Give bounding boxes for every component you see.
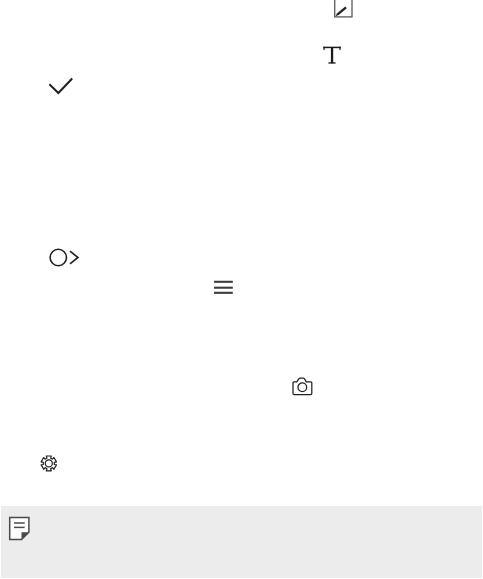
button[interactable]: Create bbox=[331, 0, 357, 18]
button[interactable]: Text format bbox=[320, 43, 342, 65]
button[interactable]: Camera bbox=[291, 376, 315, 400]
button[interactable]: Note bbox=[9, 516, 33, 540]
button[interactable]: Done bbox=[48, 74, 72, 98]
button[interactable]: Settings bbox=[37, 452, 61, 476]
button[interactable]: Menu bbox=[211, 276, 235, 300]
button[interactable]: Next bbox=[44, 245, 82, 271]
